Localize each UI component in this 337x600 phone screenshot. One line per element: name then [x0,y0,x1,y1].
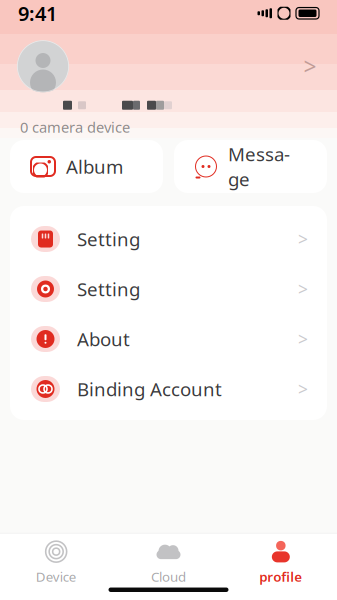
button[interactable]: Account details [295,49,325,83]
staticText: Message [228,142,290,191]
staticText: Setting [77,277,140,301]
staticText: Binding Account [77,377,222,401]
button[interactable]: Cloud [112,541,225,585]
staticText: 0 camera device [20,117,130,137]
staticText: 9:41 [18,0,57,27]
button[interactable]: Album [10,140,163,193]
button[interactable]: Device [0,541,112,585]
staticText: > [298,377,308,400]
staticText: Cloud [151,568,186,585]
staticText: > [303,51,316,81]
button[interactable]: profile [225,541,337,585]
button[interactable]: Message [174,140,327,193]
button[interactable]: Setting [10,264,327,314]
staticText: Album [66,154,123,179]
staticText: Device [36,568,77,585]
button[interactable]: Setting [10,214,327,264]
button[interactable]: About [10,314,327,364]
staticText: Setting [77,227,140,251]
staticText: > [298,277,308,300]
staticText: profile [259,568,302,585]
staticText: About [77,327,130,351]
staticText: > [298,327,308,350]
staticText: > [298,227,308,250]
button[interactable]: Binding Account [10,364,327,414]
